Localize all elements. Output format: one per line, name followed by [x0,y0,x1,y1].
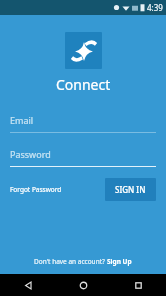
staticText: 4:39 [147,2,163,13]
staticText: Sign Up [107,257,132,266]
button[interactable]: Home [56,274,111,296]
staticText: Forgot Password [10,185,62,194]
staticText: SIGN IN [115,184,146,195]
button[interactable]: SIGN IN [105,178,156,201]
button[interactable]: Forgot Password [10,181,62,198]
button[interactable]: Back [0,274,56,296]
staticText: Connect [56,75,111,94]
staticText: Don't have an account? [34,257,107,266]
button[interactable]: Email [0,114,166,133]
button[interactable]: Don't have an account? [0,257,166,274]
button[interactable]: Recents [111,274,166,296]
staticText: Password [10,148,51,160]
staticText: Email [10,114,34,126]
button[interactable]: Password [0,148,166,167]
